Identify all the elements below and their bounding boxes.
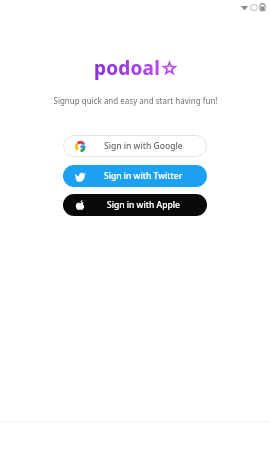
staticText: Signup quick and easy and start having f… bbox=[53, 95, 218, 106]
other: Google bbox=[75, 141, 86, 152]
staticText: Sign in with Google bbox=[104, 140, 183, 152]
other: Apple bbox=[75, 200, 85, 210]
staticText: podoal bbox=[94, 55, 161, 81]
staticText: Sign in with Twitter bbox=[104, 170, 183, 182]
other: Twitter bbox=[75, 171, 86, 182]
button[interactable]: Google bbox=[63, 135, 207, 157]
staticText: Sign in with Apple bbox=[107, 199, 180, 211]
button[interactable]: Apple bbox=[63, 194, 207, 216]
button[interactable]: Twitter bbox=[63, 165, 207, 187]
